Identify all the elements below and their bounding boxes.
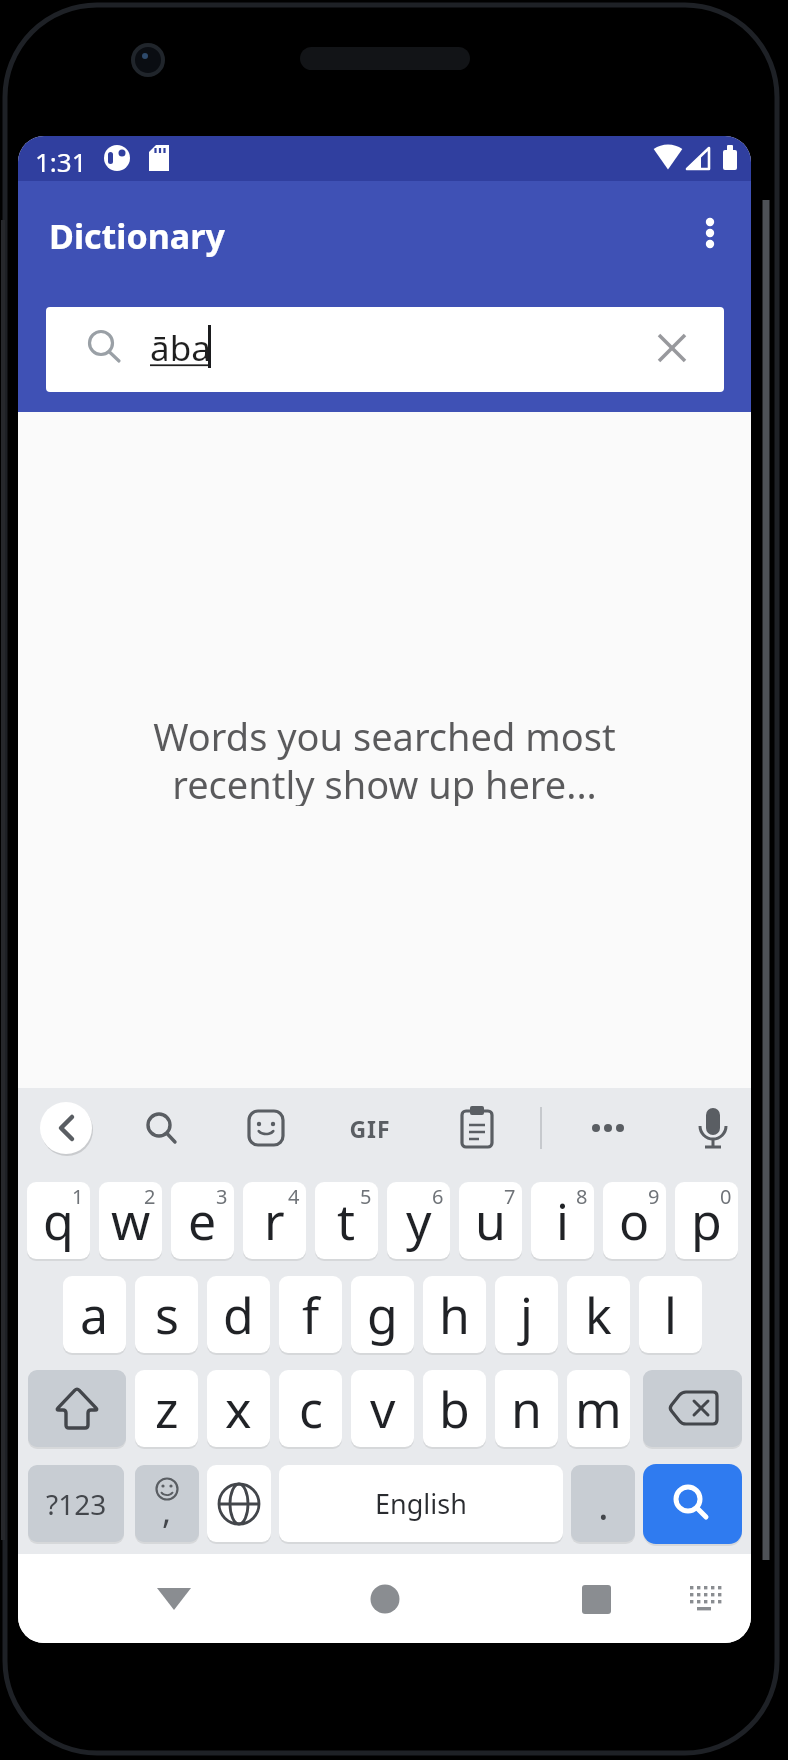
staticText: 1 — [72, 1183, 84, 1210]
button[interactable]: a — [63, 1276, 126, 1353]
staticText: , — [162, 1488, 172, 1534]
staticText: e — [188, 1187, 217, 1255]
staticText: English — [375, 1485, 467, 1522]
button[interactable] — [643, 1370, 742, 1447]
button[interactable]: ?123 — [28, 1465, 124, 1542]
button[interactable] — [344, 1102, 396, 1154]
button[interactable] — [361, 1575, 409, 1623]
staticText: Words you searched most recently show up… — [153, 710, 616, 806]
staticText: GIF — [349, 1113, 391, 1144]
staticText: z — [155, 1375, 179, 1443]
button[interactable] — [643, 1464, 742, 1544]
staticText: k — [585, 1281, 612, 1349]
button[interactable] — [40, 1102, 92, 1154]
button[interactable]: r — [243, 1182, 306, 1259]
staticText: g — [367, 1281, 398, 1349]
staticText: 9 — [648, 1183, 660, 1210]
button[interactable]: s — [135, 1276, 198, 1353]
staticText: c — [299, 1375, 323, 1443]
staticText: s — [155, 1281, 179, 1349]
button[interactable]: , — [135, 1465, 199, 1542]
staticText: 2 — [144, 1183, 156, 1210]
staticText: 6 — [432, 1183, 444, 1210]
button[interactable]: f — [279, 1276, 342, 1353]
button[interactable]: i — [531, 1182, 594, 1259]
staticText: i — [556, 1187, 569, 1255]
staticText: 0 — [720, 1183, 732, 1210]
button[interactable]: n — [495, 1370, 558, 1447]
staticText: q — [43, 1187, 74, 1255]
staticText: 7 — [504, 1183, 516, 1210]
button[interactable]: l — [639, 1276, 702, 1353]
staticText: o — [619, 1187, 650, 1255]
staticText: w — [111, 1187, 151, 1255]
button[interactable] — [136, 1102, 188, 1154]
button[interactable]: English — [279, 1465, 563, 1542]
staticText: ?123 — [46, 1485, 107, 1523]
staticText: m — [575, 1375, 622, 1443]
button[interactable]: q — [27, 1182, 90, 1259]
staticText: 4 — [288, 1183, 300, 1210]
staticText: d — [223, 1281, 254, 1349]
button[interactable]: j — [495, 1276, 558, 1353]
staticText: a — [80, 1281, 109, 1349]
staticText: . — [598, 1477, 609, 1531]
button[interactable] — [150, 1575, 198, 1623]
button[interactable] — [28, 1370, 126, 1447]
button[interactable]: z — [135, 1370, 198, 1447]
staticText: u — [475, 1187, 506, 1255]
button[interactable] — [680, 1575, 728, 1623]
button[interactable]: b — [423, 1370, 486, 1447]
button[interactable]: h — [423, 1276, 486, 1353]
staticText: l — [664, 1281, 677, 1349]
button[interactable]: x — [207, 1370, 270, 1447]
staticText: p — [691, 1187, 722, 1255]
staticText: 3 — [216, 1183, 228, 1210]
staticText: 5 — [360, 1183, 372, 1210]
button[interactable]: m — [567, 1370, 630, 1447]
staticText: āba — [150, 324, 211, 372]
button[interactable]: k — [567, 1276, 630, 1353]
staticText: v — [370, 1375, 396, 1443]
button[interactable]: . — [571, 1465, 635, 1542]
staticText: h — [439, 1281, 470, 1349]
staticText: b — [439, 1375, 470, 1443]
staticText: j — [520, 1281, 533, 1349]
staticText: f — [302, 1281, 320, 1349]
staticText: 1:31 — [35, 144, 87, 172]
button[interactable]: d — [207, 1276, 270, 1353]
button[interactable] — [46, 307, 724, 392]
staticText: y — [406, 1187, 432, 1255]
button[interactable] — [207, 1465, 271, 1542]
staticText: Dictionary — [49, 213, 225, 259]
button[interactable]: w — [99, 1182, 162, 1259]
button[interactable] — [240, 1102, 292, 1154]
button[interactable]: p — [675, 1182, 738, 1259]
button[interactable]: o — [603, 1182, 666, 1259]
button[interactable]: u — [459, 1182, 522, 1259]
staticText: x — [225, 1375, 252, 1443]
staticText: n — [511, 1375, 542, 1443]
button[interactable] — [572, 1575, 620, 1623]
button[interactable] — [582, 1102, 634, 1154]
button[interactable] — [451, 1102, 503, 1154]
button[interactable]: g — [351, 1276, 414, 1353]
button[interactable]: e — [171, 1182, 234, 1259]
button[interactable] — [686, 210, 734, 258]
button[interactable]: v — [351, 1370, 414, 1447]
button[interactable]: t — [315, 1182, 378, 1259]
button[interactable]: c — [279, 1370, 342, 1447]
staticText: 8 — [576, 1183, 588, 1210]
button[interactable] — [687, 1102, 739, 1154]
staticText: t — [337, 1187, 356, 1255]
staticText: r — [264, 1187, 285, 1255]
button[interactable]: y — [387, 1182, 450, 1259]
